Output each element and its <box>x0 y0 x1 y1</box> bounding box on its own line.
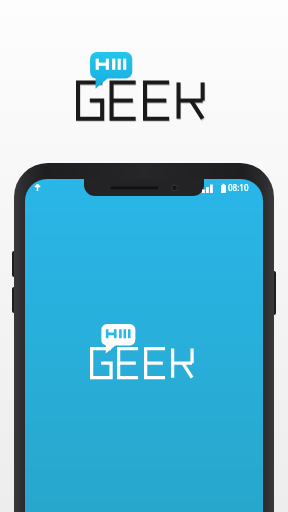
staticText: 08:10 <box>228 182 249 193</box>
other: Location <box>34 184 41 191</box>
button[interactable] <box>76 52 210 116</box>
